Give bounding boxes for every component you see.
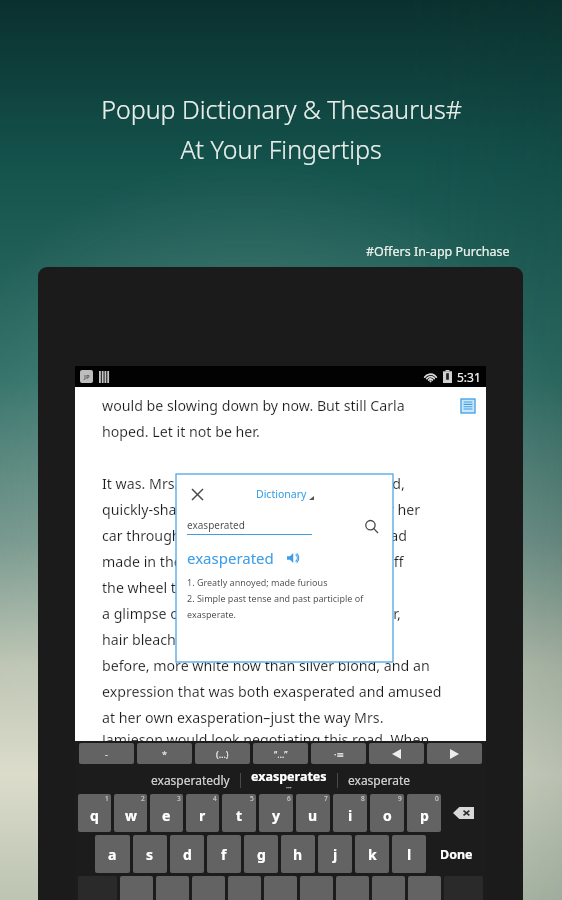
staticText: quickly-shadowed and seemingly maneuver … [102,500,421,519]
button[interactable]: * [137,743,192,764]
button[interactable]: 0 [407,794,441,832]
button[interactable]: 3 [150,794,183,832]
button[interactable]: “…” [253,743,308,764]
button[interactable]: 8 [333,794,367,832]
button[interactable]: exasperate [338,772,421,788]
staticText: 2 [141,794,145,803]
staticText: the wheel to a tilt of the window, Carla… [102,578,384,597]
staticText: 7 [324,794,328,803]
button[interactable]: l [392,835,426,873]
staticText: 5 [250,794,254,803]
button[interactable]: - [79,743,134,764]
staticText: u [308,806,318,825]
staticText: #Offers In-app Purchase [366,243,510,260]
button[interactable]: h [281,835,315,873]
button[interactable]: Search [360,515,382,537]
button[interactable]: 2 [114,794,147,832]
button[interactable]: Pronounce [284,549,302,567]
staticText: g [257,845,266,864]
staticText: * [162,748,167,760]
staticText: 4 [213,794,217,803]
staticText: a glimpse of her hair sticking out, a sh… [102,604,401,623]
button[interactable]: a [95,835,130,873]
staticText: made in the gravel. Carla shrank back an… [102,552,404,571]
button[interactable]: Done [429,835,483,873]
button[interactable]: 6 [259,794,293,832]
staticText: would be slowing down by now. But still … [102,396,405,415]
staticText: JP [84,373,90,381]
staticText: 9 [398,794,402,803]
staticText: exasperate [348,772,411,788]
button[interactable]: exasperates [241,768,337,792]
staticText: h [293,845,303,864]
button[interactable]: k [355,835,389,873]
button[interactable]: d [170,835,204,873]
staticText: 0 [435,794,439,803]
staticText: k [368,845,377,864]
staticText: w [125,806,137,825]
staticText: ·≡ [334,748,344,760]
button[interactable]: f [207,835,241,873]
staticText: d [183,845,192,864]
staticText: hair bleached now than it had ever been [102,630,371,649]
button[interactable]: Close [187,484,207,504]
staticText: s [146,845,154,864]
staticText: 6 [287,794,291,803]
staticText: It was. Mrs. Jamieson looking strange, f… [102,474,405,493]
staticText: exasperates [251,768,327,785]
button[interactable] [369,743,424,764]
button[interactable] [427,743,482,764]
staticText: at her own exasperation–just the way Mrs… [102,708,384,727]
staticText: hoped. Let it not be her. [102,422,260,441]
staticText: exasperatedly [151,772,230,788]
staticText: 8 [361,794,365,803]
staticText: ••• [286,785,292,792]
staticText: 5:31 [457,369,481,385]
button[interactable]: (…) [195,743,250,764]
button[interactable]: g [244,835,278,873]
staticText: e [162,806,171,825]
button[interactable]: 4 [186,794,219,832]
button[interactable]: exasperatedly [141,772,240,788]
button[interactable]: Table of contents [458,396,478,416]
staticText: p [420,806,429,825]
staticText: exasperated [187,548,274,568]
staticText: t [236,806,243,825]
staticText: Dictionary [256,487,307,501]
staticText: car through the ruts and puddles the rai… [102,526,408,545]
staticText: (…) [216,748,229,760]
staticText: - [105,748,108,760]
staticText: r [199,806,206,825]
staticText: a [108,845,117,864]
button[interactable]: Dictionary [256,487,314,501]
staticText: 2. Simple past tense and past participle… [187,592,364,604]
button[interactable]: 7 [296,794,330,832]
staticText: before, more white now than silver blond… [102,656,430,675]
staticText: exasperate. [187,608,236,620]
button[interactable]: 1 [78,794,111,832]
button[interactable]: 9 [370,794,404,832]
button[interactable]: j [318,835,352,873]
staticText: l [407,845,412,864]
button[interactable]: exasperated [187,518,360,535]
button[interactable]: 5 [222,794,256,832]
staticText: exasperated [187,518,245,532]
staticText: q [90,806,99,825]
staticText: Done [440,846,473,863]
staticText: f [221,845,227,864]
button[interactable]: s [133,835,167,873]
staticText: 3 [177,794,181,803]
button[interactable]: ·≡ [311,743,366,764]
button[interactable]: Backspace [444,794,483,832]
